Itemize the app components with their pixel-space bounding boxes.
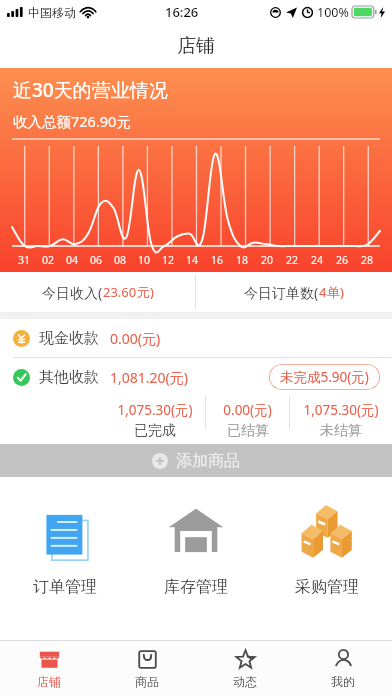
staticText: 近30天的营业情况: [13, 77, 168, 103]
staticText: 0.00(元): [110, 329, 161, 348]
staticText: 16:26: [165, 3, 199, 21]
button[interactable]: 今日收入(: [0, 272, 195, 312]
staticText: 库存管理: [164, 577, 228, 597]
button[interactable]: 采购管理: [261, 489, 392, 617]
staticText: 16: [211, 253, 224, 267]
staticText: 未结算: [320, 422, 362, 440]
staticText: 我的: [331, 674, 355, 689]
staticText: 23.60: [103, 283, 137, 301]
staticText: 18: [236, 253, 249, 267]
staticText: 4: [319, 283, 327, 301]
staticText: 未完成5.90(元): [280, 368, 369, 386]
staticText: 28: [361, 253, 374, 267]
button[interactable]: 我的: [294, 641, 392, 696]
button[interactable]: 其他收款: [0, 358, 392, 396]
button[interactable]: 未完成5.90(元): [268, 364, 381, 390]
staticText: 04: [66, 253, 79, 267]
staticText: 今日订单数(: [244, 283, 319, 302]
button[interactable]: 0.00(元): [206, 396, 289, 444]
button[interactable]: 添加商品: [0, 444, 392, 477]
staticText: 22: [286, 253, 299, 267]
staticText: 已结算: [227, 422, 269, 440]
staticText: 31: [18, 253, 31, 267]
staticText: 其他收款: [39, 368, 99, 387]
staticText: 添加商品: [176, 451, 240, 471]
button[interactable]: 店铺: [0, 641, 98, 696]
staticText: 14: [186, 253, 199, 267]
button[interactable]: 商品: [98, 641, 196, 696]
staticText: 1,081.20(元): [110, 368, 188, 387]
button[interactable]: 现金收款: [0, 319, 392, 357]
staticText: 26: [336, 253, 349, 267]
staticText: 元): [137, 283, 154, 301]
staticText: 今日收入(: [42, 283, 103, 302]
staticText: 采购管理: [295, 577, 359, 597]
staticText: 店铺: [37, 674, 61, 689]
staticText: 动态: [233, 674, 257, 689]
staticText: 12: [162, 253, 175, 267]
staticText: 已完成: [134, 422, 176, 440]
staticText: 24: [311, 253, 324, 267]
staticText: 20: [261, 253, 274, 267]
button[interactable]: 1,075.30(元): [290, 396, 392, 444]
staticText: 店铺: [177, 34, 215, 58]
staticText: 商品: [135, 674, 159, 689]
staticText: 10: [138, 253, 151, 267]
staticText: 100%: [317, 4, 349, 21]
staticText: 0.00(元): [223, 401, 272, 419]
staticText: 1,075.30(元): [117, 401, 193, 419]
staticText: 订单管理: [33, 577, 97, 597]
staticText: 收入总额726.90元: [13, 111, 131, 131]
staticText: 1,075.30(元): [303, 401, 379, 419]
staticText: 现金收款: [39, 329, 99, 348]
staticText: 02: [42, 253, 55, 267]
staticText: 06: [90, 253, 103, 267]
button[interactable]: 今日订单数(: [196, 272, 392, 312]
button[interactable]: 动态: [196, 641, 294, 696]
staticText: 08: [114, 253, 127, 267]
staticText: 单): [327, 283, 344, 301]
button[interactable]: 1,075.30(元): [104, 396, 205, 444]
staticText: 中国移动: [28, 5, 76, 20]
button[interactable]: 库存管理: [130, 489, 261, 617]
button[interactable]: 订单管理: [0, 489, 130, 617]
